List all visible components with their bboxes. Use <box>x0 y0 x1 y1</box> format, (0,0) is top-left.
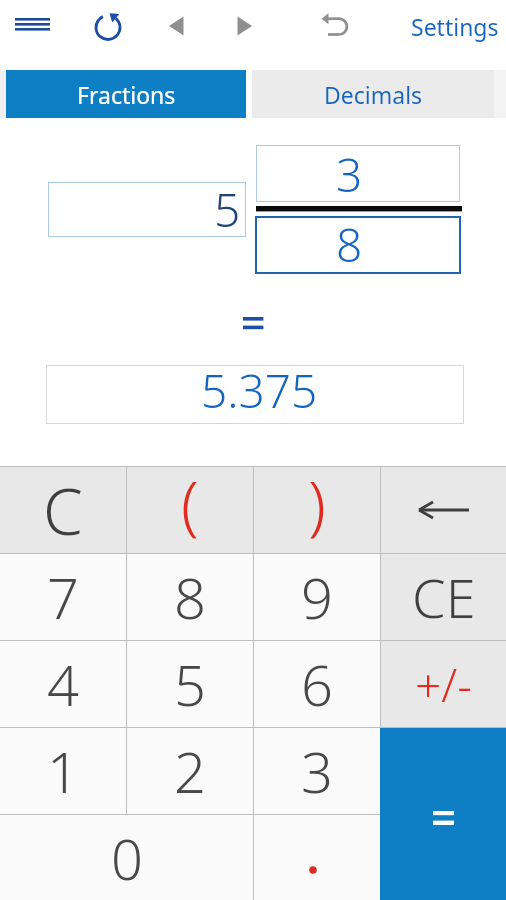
staticText: 4 <box>47 646 79 722</box>
button[interactable]: 1 <box>0 728 126 814</box>
button[interactable]: 3 <box>254 728 380 814</box>
staticText: 0 <box>111 820 143 896</box>
staticText: ( <box>181 460 199 546</box>
button[interactable] <box>90 8 126 44</box>
staticText: Settings <box>411 11 499 42</box>
staticText: 7 <box>47 559 79 635</box>
button[interactable]: 6 <box>254 641 380 727</box>
button[interactable]: 8 <box>255 216 461 274</box>
staticText: 1 <box>47 733 79 809</box>
button[interactable] <box>381 467 506 553</box>
button[interactable]: 2 <box>127 728 253 814</box>
button[interactable]: CE <box>381 554 506 640</box>
button[interactable]: ( <box>127 467 253 553</box>
button[interactable] <box>380 728 506 900</box>
button[interactable]: ) <box>254 467 380 553</box>
button[interactable]: 8 <box>127 554 253 640</box>
button[interactable] <box>10 10 54 42</box>
button[interactable]: 3 <box>256 145 460 202</box>
button[interactable]: Decimals <box>252 70 494 118</box>
button[interactable]: +/- <box>381 641 506 727</box>
staticText: 9 <box>301 559 333 635</box>
button[interactable]: Fractions <box>6 70 246 118</box>
staticText: C <box>43 467 83 553</box>
staticText: 3 <box>301 733 333 809</box>
button[interactable]: Settings <box>403 8 506 44</box>
staticText: 2 <box>174 733 206 809</box>
button[interactable] <box>381 815 506 900</box>
button[interactable] <box>312 8 354 44</box>
button[interactable] <box>160 10 192 42</box>
staticText: +/- <box>415 653 473 716</box>
button[interactable]: 5 <box>48 182 246 237</box>
button[interactable] <box>254 815 380 900</box>
staticText: CE <box>412 560 476 634</box>
staticText: 5 <box>214 178 241 233</box>
staticText: 8 <box>336 213 363 271</box>
button[interactable] <box>381 728 506 814</box>
staticText: Decimals <box>324 79 423 110</box>
staticText: 3 <box>336 143 363 200</box>
staticText: 5.375 <box>201 359 318 418</box>
button[interactable]: 7 <box>0 554 126 640</box>
button[interactable]: C <box>0 467 126 553</box>
staticText: Fractions <box>77 79 176 110</box>
button[interactable]: 0 <box>0 815 253 900</box>
staticText: ) <box>308 460 326 546</box>
button[interactable]: 9 <box>254 554 380 640</box>
staticText: 8 <box>174 559 206 635</box>
staticText: 6 <box>301 646 333 722</box>
button[interactable] <box>229 10 261 42</box>
button[interactable]: 5 <box>127 641 253 727</box>
staticText: 5 <box>174 646 206 722</box>
button[interactable]: 4 <box>0 641 126 727</box>
